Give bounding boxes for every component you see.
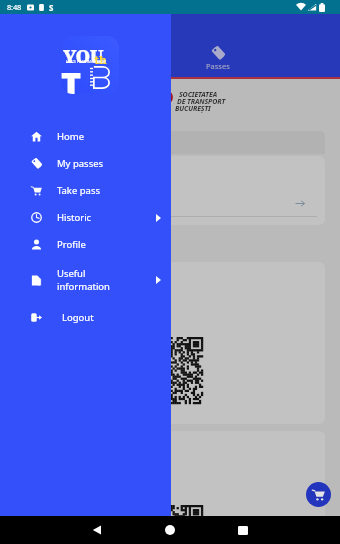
button[interactable]: Take pass [0,177,171,204]
staticText: Home [57,130,85,143]
staticText: SOCIETATEA [179,90,217,100]
staticText: Passes [206,61,230,71]
button[interactable]: Home [165,525,175,535]
button[interactable]: Back [92,525,102,535]
staticText: Useful information [57,267,110,293]
button[interactable]: My passes [0,150,171,177]
staticText: Logout [62,311,94,324]
staticText: YOU [63,44,104,69]
button[interactable]: Buy pass [306,482,331,507]
button[interactable]: Useful information [0,258,171,302]
staticText: Take pass [57,184,101,197]
staticText: My passes [57,157,104,170]
button[interactable]: Historic [0,204,171,231]
staticText: DE TRANSPORT [177,97,226,107]
button[interactable]: Profile [0,231,171,258]
staticText: BUCUREȘTI [175,104,211,114]
button[interactable]: Logout [0,302,171,332]
button[interactable] [10,262,325,424]
staticText: LET'S PASS AND PLAY [66,59,107,64]
button[interactable]: Home [0,123,171,150]
button[interactable] [10,431,325,531]
staticText: T [61,61,82,94]
staticText: Profile [57,238,86,251]
button[interactable]: Recent apps [238,526,248,535]
button[interactable]: Passes [196,46,239,71]
button[interactable] [10,156,325,225]
staticText: S [49,2,54,13]
staticText: th [94,52,107,67]
staticText: 8:48 [7,2,22,12]
staticText: Historic [57,211,92,224]
